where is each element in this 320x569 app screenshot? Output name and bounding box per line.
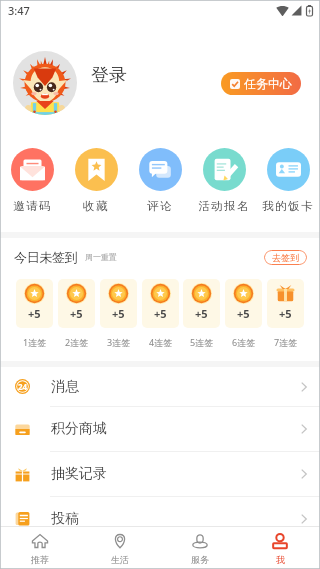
- staticText: +5: [237, 306, 250, 321]
- button[interactable]: 收藏: [64, 148, 128, 232]
- staticText: +5: [28, 306, 41, 321]
- staticText: +5: [70, 306, 83, 321]
- staticText: 收藏: [83, 199, 109, 213]
- button[interactable]: 我的饭卡: [256, 148, 320, 232]
- staticText: 5连签: [190, 336, 214, 348]
- button[interactable]: Avatar: [13, 51, 77, 115]
- staticText: 抽奖记录: [51, 465, 107, 483]
- staticText: 推荐: [31, 554, 49, 565]
- button[interactable]: 邀请码: [0, 148, 64, 232]
- button[interactable]: +5: [183, 279, 220, 328]
- button[interactable]: 推荐: [0, 527, 80, 569]
- staticText: 24: [18, 381, 28, 392]
- button[interactable]: 我: [240, 527, 320, 569]
- staticText: 3:47: [8, 3, 30, 18]
- staticText: 7连签: [274, 336, 298, 348]
- button[interactable]: +5: [142, 279, 179, 328]
- staticText: 任务中心: [244, 76, 292, 91]
- staticText: 2连签: [65, 336, 89, 348]
- other: More: [301, 514, 307, 524]
- staticText: 我: [276, 554, 285, 565]
- staticText: 去签到: [272, 252, 299, 263]
- staticText: 服务: [191, 554, 209, 565]
- button[interactable]: 服务: [160, 527, 240, 569]
- button[interactable]: 生活: [80, 527, 160, 569]
- button[interactable]: 积分商城: [0, 407, 320, 451]
- button[interactable]: +5: [58, 279, 95, 328]
- button[interactable]: 投稿: [0, 497, 320, 540]
- staticText: 活动报名: [198, 199, 250, 213]
- button[interactable]: +5: [100, 279, 137, 328]
- staticText: 积分商城: [51, 420, 107, 438]
- button[interactable]: +5: [267, 279, 304, 328]
- other: More: [301, 469, 307, 479]
- other: More: [301, 424, 307, 434]
- other: More: [301, 382, 307, 392]
- button[interactable]: +5: [16, 279, 53, 328]
- staticText: 邀请码: [13, 199, 52, 213]
- button[interactable]: 登录: [91, 64, 127, 87]
- button[interactable]: 24: [0, 367, 320, 406]
- staticText: 投稿: [51, 510, 79, 528]
- staticText: +5: [279, 306, 292, 321]
- staticText: 今日未签到: [14, 249, 78, 265]
- button[interactable]: 评论: [128, 148, 192, 232]
- staticText: 1连签: [23, 336, 47, 348]
- button[interactable]: 去签到: [264, 250, 307, 265]
- staticText: +5: [195, 306, 208, 321]
- staticText: 生活: [111, 554, 129, 565]
- staticText: +5: [112, 306, 125, 321]
- staticText: 消息: [51, 378, 79, 396]
- button[interactable]: +5: [225, 279, 262, 328]
- staticText: 我的饭卡: [262, 199, 314, 213]
- button[interactable]: 活动报名: [192, 148, 256, 232]
- button[interactable]: 抽奖记录: [0, 452, 320, 496]
- staticText: 6连签: [232, 336, 256, 348]
- staticText: +5: [154, 306, 167, 321]
- staticText: 周一重置: [85, 252, 117, 262]
- staticText: 3连签: [107, 336, 131, 348]
- staticText: 4连签: [149, 336, 173, 348]
- button[interactable]: 任务中心: [221, 72, 301, 95]
- staticText: 评论: [147, 199, 173, 213]
